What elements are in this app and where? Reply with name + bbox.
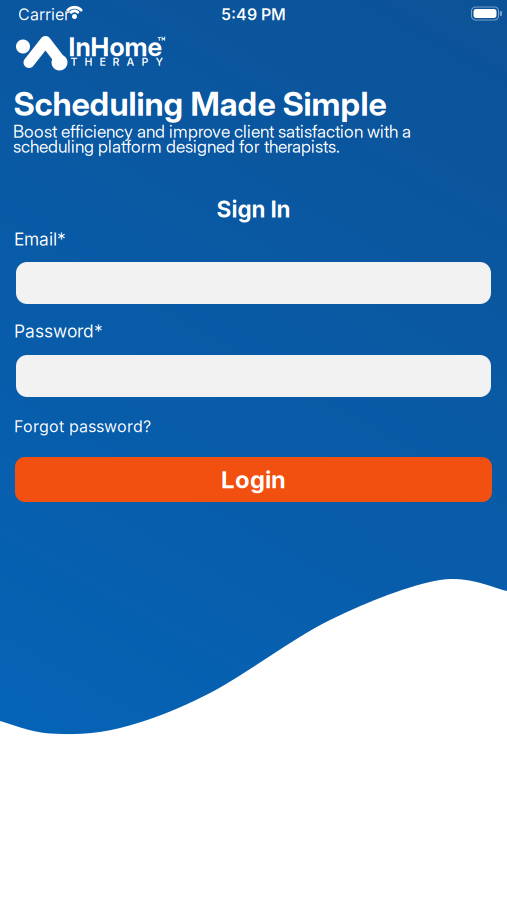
staticText: Email* (14, 229, 66, 249)
staticText: scheduling platform designed for therapi… (13, 136, 340, 157)
staticText: InHome (68, 31, 162, 62)
staticText: Password* (14, 321, 103, 341)
staticText: 5:49 PM (221, 5, 286, 24)
button[interactable]: Email (16, 262, 491, 304)
staticText: Login (221, 465, 286, 494)
staticText: Scheduling Made Simple (13, 84, 386, 123)
staticText: T H E R A P Y (70, 55, 163, 68)
staticText: Sign In (216, 196, 290, 223)
staticText: Forgot password? (14, 417, 151, 436)
button[interactable]: Login (15, 457, 492, 502)
button[interactable]: Forgot password? (14, 417, 151, 436)
staticText: Boost efficiency and improve client sati… (13, 121, 411, 142)
staticText: Carrier (18, 5, 70, 24)
button[interactable]: Password (16, 355, 491, 397)
